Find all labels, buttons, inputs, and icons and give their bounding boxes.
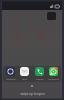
staticText: WhatsApp xyxy=(48,77,59,80)
button[interactable]: WhatsApp xyxy=(48,66,59,80)
button[interactable]: Widget xyxy=(47,12,56,20)
staticText: Phone xyxy=(36,77,44,80)
button[interactable]: Phone xyxy=(34,66,45,80)
button[interactable]: Settings xyxy=(5,66,16,80)
staticText: Mail xyxy=(22,77,27,80)
button[interactable]: Messages xyxy=(19,66,30,80)
staticText: swipe up to open xyxy=(20,92,45,96)
staticText: Settings xyxy=(6,77,16,80)
